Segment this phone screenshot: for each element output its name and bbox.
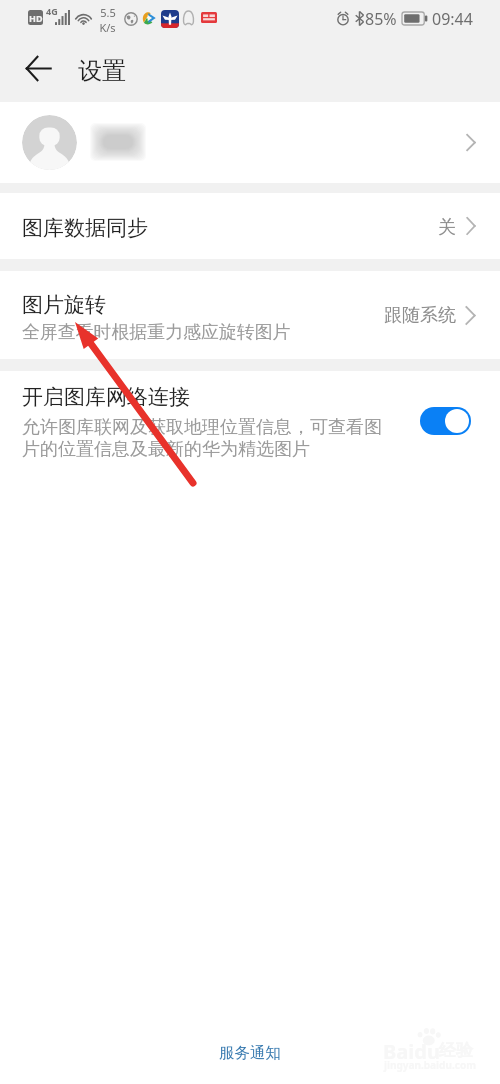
- staticText: 跟随系统: [384, 304, 456, 327]
- staticText: 图库数据同步: [22, 215, 148, 241]
- staticText: jingyan.baidu.com: [384, 1058, 476, 1072]
- button[interactable]: 开启图库网络连接: [0, 371, 500, 470]
- staticText: 4G: [46, 5, 58, 17]
- staticText: K/s: [99, 20, 116, 35]
- staticText: 85%: [365, 8, 397, 30]
- button[interactable]: [0, 102, 500, 183]
- staticText: 经验: [439, 1040, 473, 1061]
- staticText: 关: [438, 216, 456, 239]
- staticText: 全屏查看时根据重力感应旋转图片: [22, 321, 291, 344]
- staticText: 允许图库联网及获取地理位置信息，可查看图 片的位置信息及最新的华为精选图片: [22, 416, 382, 460]
- button[interactable]: 图库数据同步: [0, 193, 500, 259]
- staticText: 09:44: [432, 8, 473, 30]
- staticText: 图片旋转: [22, 292, 106, 318]
- staticText: Baidu: [383, 1038, 440, 1065]
- staticText: 开启图库网络连接: [22, 384, 190, 410]
- button[interactable]: Back: [12, 42, 64, 94]
- staticText: 服务通知: [219, 1043, 281, 1063]
- button[interactable]: 图片旋转: [0, 271, 500, 359]
- button[interactable]: Toggle gallery network: [420, 407, 471, 435]
- staticText: 5.5: [100, 5, 116, 20]
- staticText: HD: [29, 12, 43, 24]
- staticText: 设置: [78, 56, 126, 86]
- button[interactable]: 服务通知: [205, 1036, 295, 1070]
